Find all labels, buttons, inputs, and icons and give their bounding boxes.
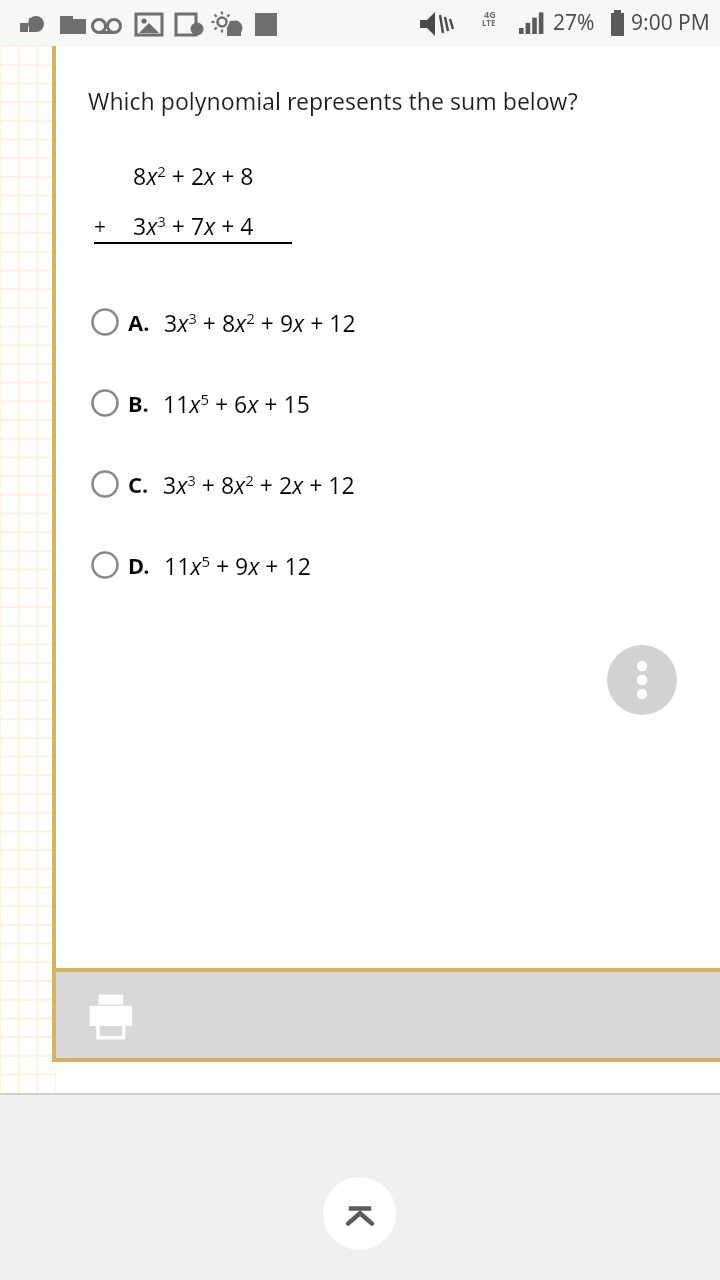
staticText: + [94, 212, 107, 241]
staticText: 3x3 + 8x2 + 2x + 12 [163, 469, 355, 500]
staticText: LTE [482, 17, 496, 28]
button[interactable]: B. [88, 377, 648, 429]
staticText: 11x5 + 9x + 12 [164, 550, 311, 581]
button[interactable]: Print [80, 985, 144, 1049]
staticText: 27% [553, 8, 595, 37]
button[interactable]: More options [607, 645, 677, 715]
button[interactable]: D. [88, 539, 648, 591]
staticText: C. [128, 469, 149, 499]
button[interactable]: Scroll to top [323, 1177, 396, 1250]
staticText: Which polynomial represents the sum belo… [88, 85, 578, 116]
button[interactable]: A. [88, 296, 648, 348]
staticText: 9:00 PM [631, 8, 710, 37]
staticText: 3x3 + 7x + 4 [133, 210, 254, 241]
staticText: 3x3 + 8x2 + 9x + 12 [164, 307, 356, 338]
staticText: 8x2 + 2x + 8 [133, 160, 254, 191]
staticText: A. [128, 307, 150, 337]
staticText: D. [128, 550, 150, 580]
staticText: 11x5 + 6x + 15 [163, 388, 310, 419]
button[interactable]: C. [88, 458, 648, 510]
staticText: B. [128, 388, 149, 418]
staticText: 4G [484, 8, 496, 20]
